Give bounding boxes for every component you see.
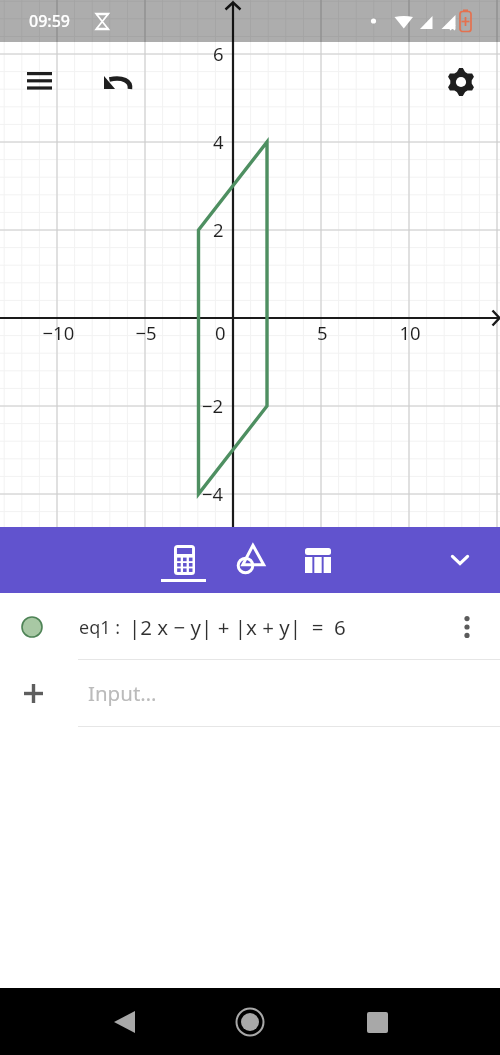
button[interactable]: Home — [218, 990, 282, 1054]
staticText: eq1 : — [79, 615, 121, 640]
staticText: |2 x − y| + |x + y| = 6 — [129, 613, 346, 641]
button[interactable]: Calculator — [161, 531, 206, 589]
button[interactable]: Settings — [438, 59, 484, 105]
staticText: 09:59 — [29, 10, 70, 32]
button[interactable]: Collapse — [437, 537, 483, 583]
button[interactable]: Recents — [345, 990, 409, 1054]
button[interactable]: Menu — [16, 58, 62, 104]
button[interactable]: Table — [297, 531, 338, 583]
button[interactable]: eq1 : — [0, 593, 500, 660]
button[interactable]: More options — [441, 593, 493, 660]
button[interactable]: Geometry — [230, 531, 268, 583]
staticText: Input… — [88, 679, 157, 707]
button[interactable]: Undo — [94, 59, 140, 105]
button[interactable]: Input… — [0, 660, 500, 727]
button[interactable]: Back — [92, 990, 156, 1054]
